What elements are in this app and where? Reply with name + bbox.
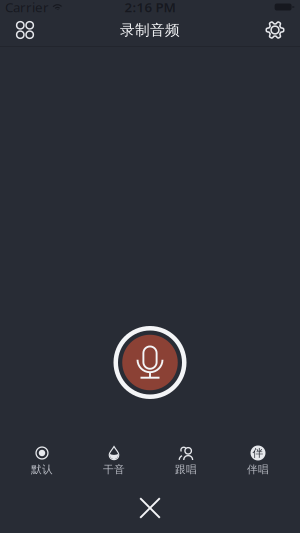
- staticText: 干音: [103, 463, 125, 476]
- button[interactable]: Close: [122, 486, 178, 530]
- staticText: 录制音频: [120, 21, 180, 39]
- button[interactable]: Record: [113, 326, 186, 399]
- button[interactable]: 干音: [78, 440, 150, 486]
- staticText: 伴唱: [247, 463, 269, 476]
- button[interactable]: 默认: [6, 440, 78, 486]
- staticText: 默认: [31, 463, 53, 476]
- button[interactable]: Grid menu: [3, 14, 47, 46]
- staticText: 跟唱: [175, 463, 197, 476]
- staticText: Carrier: [5, 0, 49, 16]
- button[interactable]: 跟唱: [150, 440, 222, 486]
- staticText: 伴: [252, 446, 263, 459]
- staticText: 2:16 PM: [124, 0, 175, 16]
- button[interactable]: 伴: [222, 440, 294, 486]
- button[interactable]: Settings: [253, 14, 297, 46]
